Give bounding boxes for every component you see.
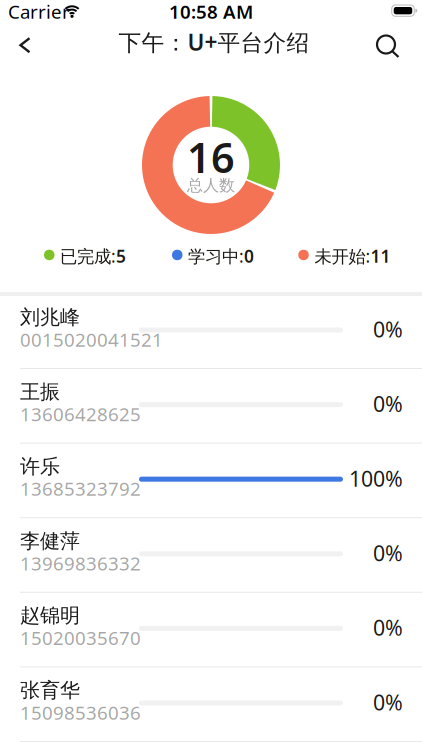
button[interactable]: 王振 (0, 371, 422, 445)
staticText: 李健萍 (20, 529, 80, 553)
staticText: 学习中:0 (188, 244, 254, 267)
staticText: 下午：U+平台介绍 (118, 27, 309, 57)
button[interactable]: 李健萍 (0, 520, 422, 594)
staticText: 张育华 (20, 678, 80, 703)
button[interactable]: 许乐 (0, 445, 422, 520)
staticText: 王振 (20, 380, 60, 404)
staticText: 0% (373, 390, 403, 418)
button[interactable]: 刘兆峰 (0, 296, 422, 371)
button[interactable]: 张育华 (0, 669, 422, 744)
staticText: 13606428625 (20, 402, 141, 426)
staticText: 0015020041521 (20, 327, 163, 352)
staticText: 16 (187, 130, 235, 184)
staticText: 15020035670 (20, 625, 141, 650)
staticText: 0% (373, 613, 403, 642)
staticText: Carrier (8, 0, 70, 24)
staticText: 0% (373, 539, 403, 567)
staticText: 总人数 (187, 176, 235, 195)
button[interactable]: Search (364, 25, 411, 68)
staticText: 刘兆峰 (20, 305, 80, 330)
staticText: 10:58 AM (169, 0, 253, 24)
staticText: 100% (349, 464, 403, 492)
staticText: 13685323792 (20, 476, 141, 501)
staticText: 赵锦明 (20, 603, 80, 628)
staticText: 已完成:5 (60, 244, 126, 267)
staticText: 0% (373, 688, 403, 716)
staticText: 13969836332 (20, 551, 141, 576)
button[interactable]: 赵锦明 (0, 594, 422, 669)
staticText: 许乐 (20, 454, 60, 479)
staticText: 未开始:11 (314, 244, 390, 267)
staticText: 0% (373, 315, 403, 343)
button[interactable]: Back (0, 24, 45, 67)
staticText: 15098536036 (20, 700, 141, 725)
